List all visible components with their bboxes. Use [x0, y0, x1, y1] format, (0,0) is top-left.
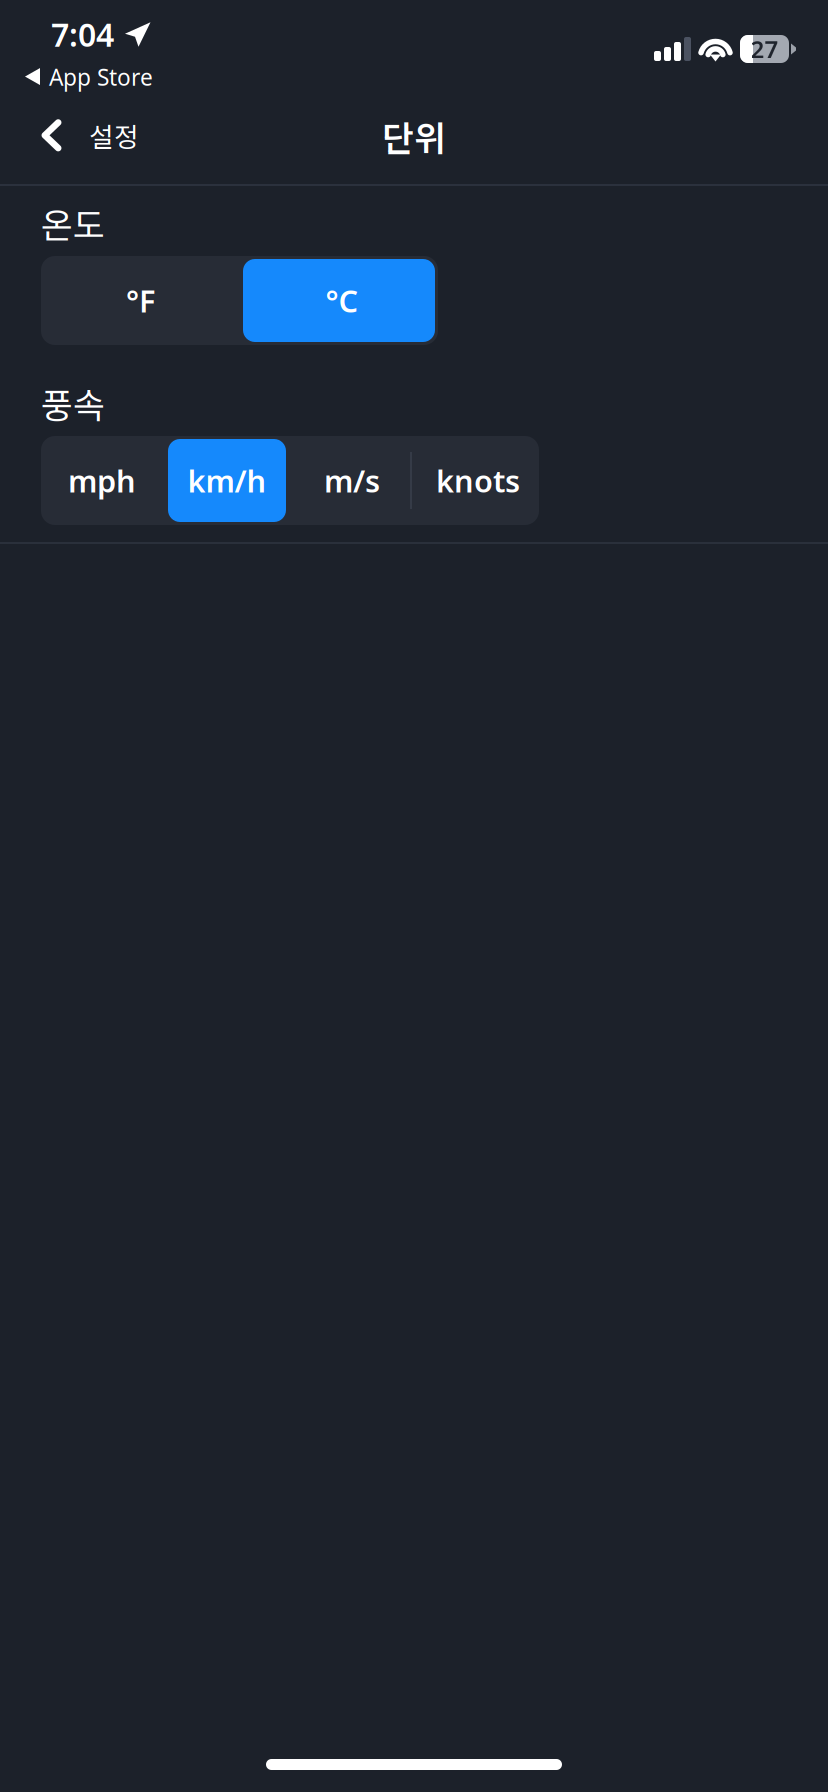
staticText: 단위 [382, 111, 446, 161]
staticText: 27 [750, 33, 778, 65]
staticText: km/h [187, 460, 266, 501]
staticText: App Store [49, 62, 153, 92]
button[interactable]: °C [243, 259, 435, 342]
staticText: knots [436, 460, 520, 501]
button[interactable]: °F [44, 259, 243, 342]
button[interactable]: m/s [286, 439, 410, 522]
staticText: mph [68, 460, 136, 501]
button[interactable]: App Store [25, 58, 153, 96]
button[interactable]: mph [44, 439, 168, 522]
staticText: 설정 [89, 116, 139, 155]
button[interactable]: km/h [168, 439, 286, 522]
button[interactable]: knots [410, 439, 536, 522]
staticText: m/s [324, 460, 380, 501]
staticText: 7:04 [51, 13, 114, 55]
staticText: 풍속 [41, 378, 105, 428]
staticText: °F [126, 280, 155, 321]
button[interactable]: 설정 [32, 102, 149, 169]
staticText: 온도 [41, 198, 105, 248]
staticText: °C [325, 280, 358, 321]
